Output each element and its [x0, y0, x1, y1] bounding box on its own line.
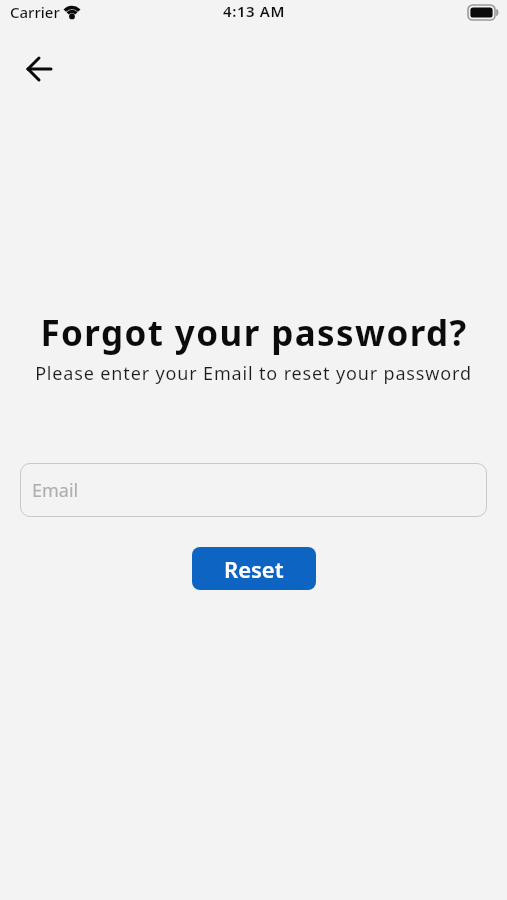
staticText: Forgot your password? [40, 309, 468, 357]
staticText: Carrier [10, 2, 60, 22]
button[interactable] [20, 50, 58, 88]
staticText: Email [32, 478, 79, 503]
staticText: Please enter your Email to reset your pa… [35, 361, 472, 386]
button[interactable]: Email [20, 463, 487, 517]
button[interactable]: Reset [192, 547, 316, 590]
staticText: 4:13 AM [223, 1, 285, 21]
staticText: Reset [224, 554, 284, 584]
